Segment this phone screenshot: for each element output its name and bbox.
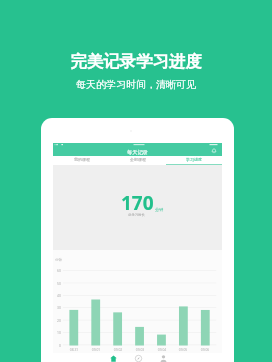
staticText: 20 xyxy=(54,318,61,323)
button[interactable]: Notifications xyxy=(211,148,217,154)
button[interactable]: 学习进度 xyxy=(166,156,222,165)
staticText: 每天的学习时间，清晰可见 xyxy=(0,78,272,91)
button[interactable]: 我的课程 xyxy=(53,156,110,165)
staticText: 我的课程 xyxy=(74,157,90,162)
staticText: 0 xyxy=(54,343,61,348)
staticText: 170 xyxy=(121,190,154,216)
staticText: 学习进度 xyxy=(186,157,202,162)
button[interactable]: Discover xyxy=(134,354,142,362)
staticText: 09.02 xyxy=(107,347,129,351)
staticText: 08.31 xyxy=(63,347,85,351)
staticText: 30 xyxy=(54,305,61,310)
staticText: 40 xyxy=(54,293,61,298)
staticText: 60 xyxy=(54,268,61,273)
staticText: 09.04 xyxy=(151,347,173,351)
staticText: 完美记录学习进度 xyxy=(0,51,272,72)
staticText: 50 xyxy=(54,281,61,286)
staticText: 分钟 xyxy=(55,258,62,262)
staticText: 全部课程 xyxy=(130,157,146,162)
button[interactable]: Home xyxy=(109,354,117,362)
button[interactable]: Profile xyxy=(159,354,167,362)
staticText: 09.06 xyxy=(194,347,216,351)
button[interactable]: 全部课程 xyxy=(110,156,166,165)
staticText: 09.05 xyxy=(172,347,194,351)
staticText: 总学习时长 xyxy=(128,213,145,217)
staticText: 每天记录 xyxy=(127,149,148,156)
staticText: 10 xyxy=(54,330,61,335)
staticText: 分钟 xyxy=(155,207,164,212)
staticText: 09.03 xyxy=(129,347,151,351)
staticText: 09.01 xyxy=(85,347,107,351)
